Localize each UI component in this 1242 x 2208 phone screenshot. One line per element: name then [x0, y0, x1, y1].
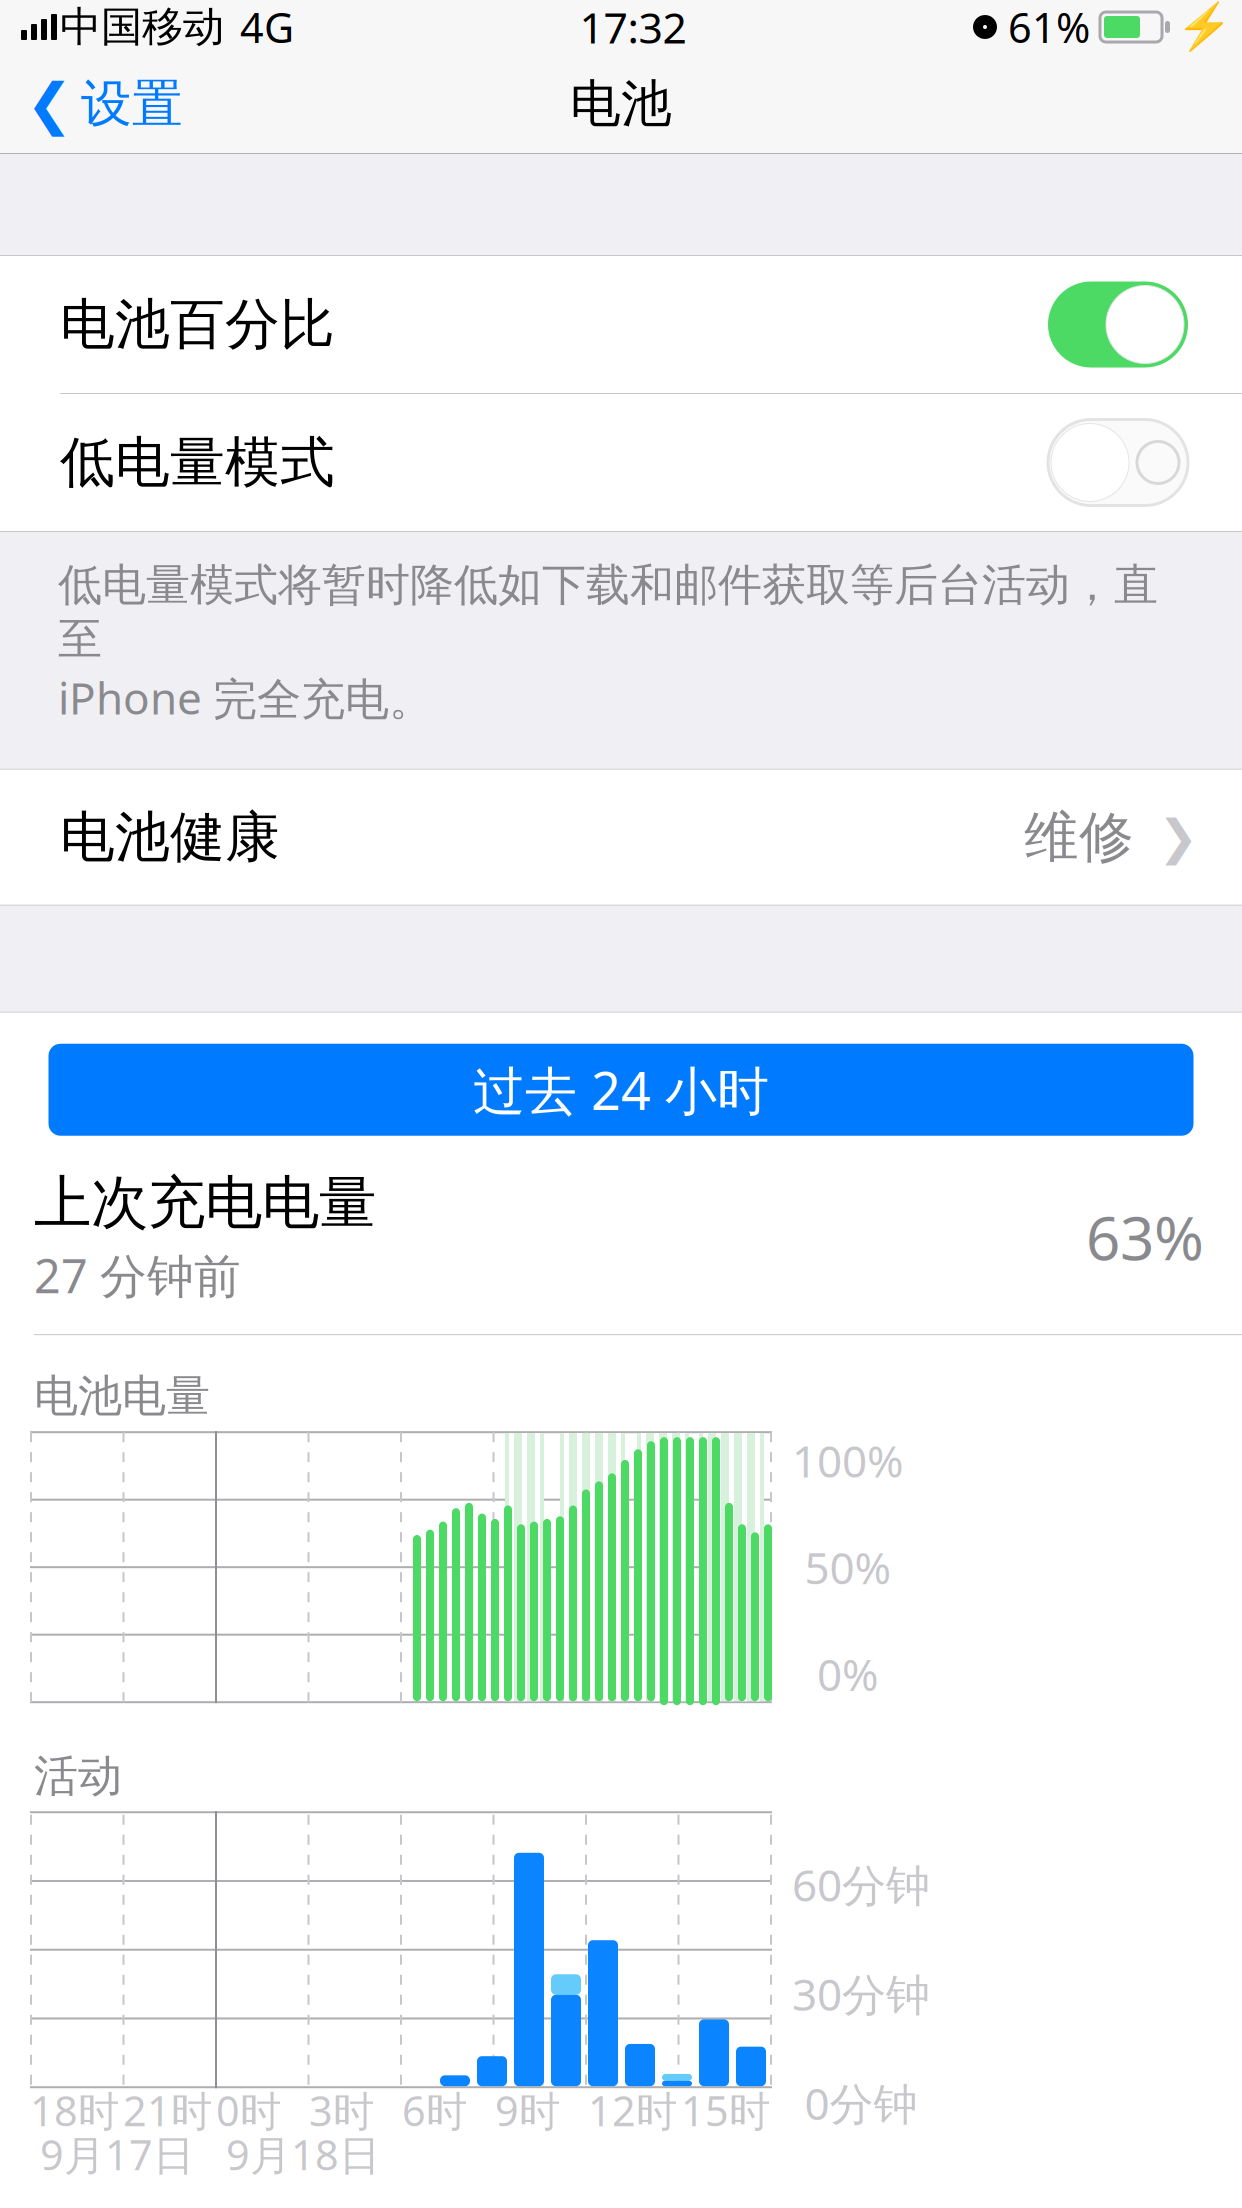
staticText: 17:32	[579, 0, 686, 55]
staticText: ❯	[1158, 810, 1198, 864]
staticText: 9时	[495, 2083, 560, 2138]
staticText: 61%	[1008, 0, 1090, 54]
staticText: 21时	[123, 2083, 212, 2138]
staticText: 15时	[681, 2083, 770, 2138]
button[interactable]: 过去 24 小时	[48, 1044, 1193, 1136]
button[interactable]: 电池百分比	[0, 256, 1242, 393]
staticText: 50%	[804, 1538, 891, 1596]
staticText: 电池百分比	[60, 291, 335, 358]
staticText: 电池	[570, 73, 672, 135]
staticText: 27 分钟前	[34, 1244, 241, 1306]
staticText: 4G	[240, 0, 294, 54]
staticText: 30分钟	[792, 1964, 930, 2023]
staticText: 0分钟	[804, 2074, 917, 2132]
staticText: 100%	[792, 1431, 904, 1490]
staticText: 中国移动	[60, 2, 224, 52]
staticText: 60分钟	[792, 1855, 930, 1914]
staticText: ⚡	[1176, 1, 1232, 53]
staticText: 0%	[817, 1645, 879, 1703]
staticText: 过去 24 小时	[473, 1055, 769, 1124]
staticText: 3时	[309, 2083, 374, 2138]
staticText: ❮	[26, 72, 73, 136]
staticText: 12时	[588, 2083, 677, 2138]
staticText: 9月18日	[226, 2127, 380, 2182]
staticText: 上次充电电量	[34, 1168, 376, 1238]
staticText: 活动	[34, 1749, 122, 1803]
staticText: 低电量模式	[60, 429, 335, 496]
staticText: 63%	[1086, 1197, 1204, 1277]
staticText: 电池电量	[34, 1369, 210, 1423]
staticText: 6时	[402, 2083, 467, 2138]
button[interactable]: 电池健康	[0, 770, 1242, 905]
staticText: iPhone 完全充电。	[58, 668, 433, 727]
staticText: 18时	[30, 2083, 119, 2138]
staticText: 9月17日	[40, 2127, 194, 2182]
button[interactable]: 低电量模式	[0, 394, 1242, 531]
staticText: 维修	[1024, 804, 1134, 871]
staticText: 设置	[81, 73, 183, 135]
staticText: 0时	[216, 2083, 281, 2138]
button[interactable]: ❮	[0, 54, 203, 154]
staticText: 低电量模式将暂时降低如下载和邮件获取等后台活动，直至	[58, 558, 1158, 666]
staticText: 电池健康	[60, 804, 280, 871]
